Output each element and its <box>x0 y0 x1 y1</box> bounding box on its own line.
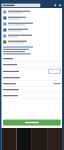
button[interactable]: Address bar <box>1 4 40 7</box>
button[interactable] <box>1 39 62 45</box>
button[interactable] <box>1 33 62 39</box>
button[interactable]: More options <box>59 4 61 6</box>
button[interactable] <box>1 119 62 128</box>
button[interactable] <box>1 27 62 33</box>
button[interactable] <box>1 21 62 27</box>
button[interactable] <box>1 15 62 21</box>
button[interactable] <box>1 9 62 15</box>
button[interactable]: Tabs <box>54 4 56 6</box>
